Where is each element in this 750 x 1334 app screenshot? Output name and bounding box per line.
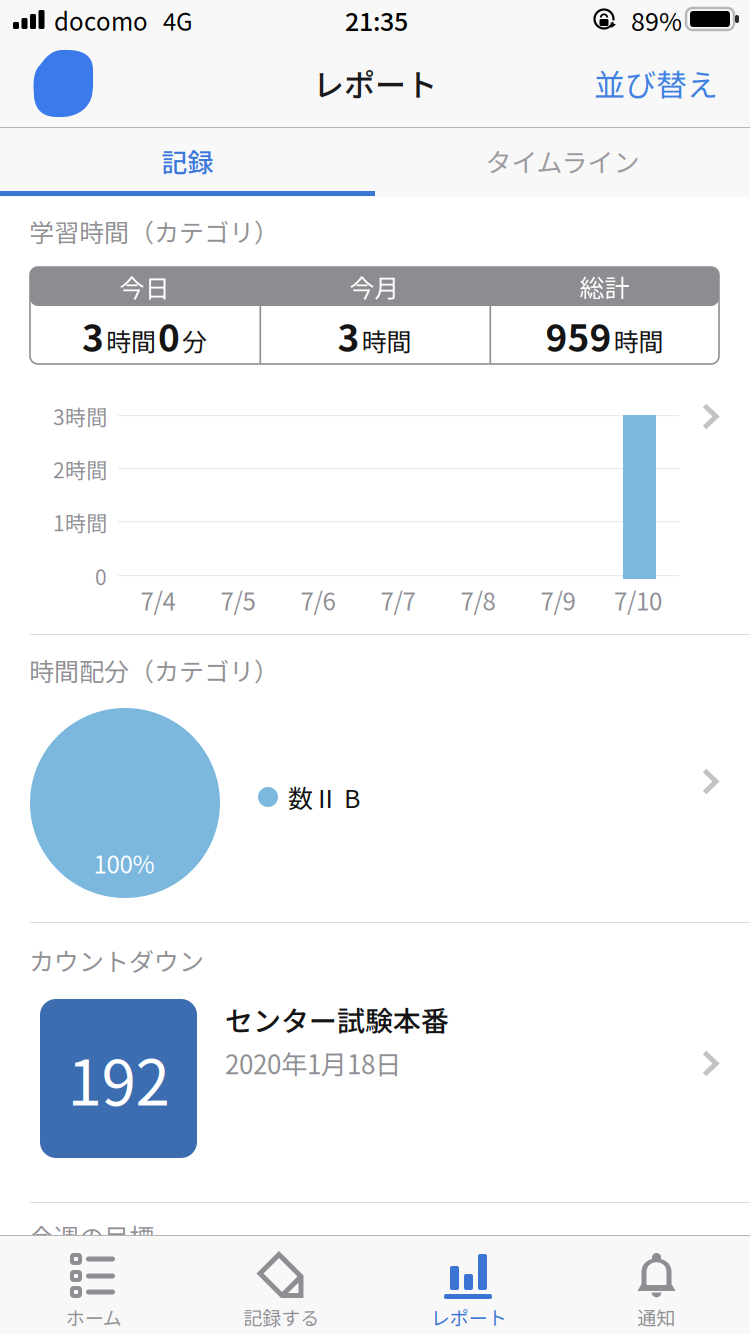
staticText: 4G	[163, 3, 193, 38]
staticText: 0	[158, 308, 180, 362]
staticText: ホーム	[66, 1303, 122, 1331]
staticText: 通知	[637, 1303, 675, 1331]
staticText: 時間	[106, 322, 156, 358]
staticText: 100%	[93, 846, 154, 880]
staticText: docomo	[54, 3, 148, 38]
staticText: 時間	[613, 322, 663, 358]
staticText: タイムライン	[485, 142, 639, 180]
staticText: 7/9	[540, 583, 575, 617]
staticText: 3	[82, 308, 104, 362]
staticText: 7/5	[220, 583, 255, 617]
staticText: 21:35	[345, 2, 408, 38]
staticText: 3時間	[53, 401, 107, 431]
staticText: 7/8	[460, 583, 495, 617]
button[interactable]: 並び替え	[568, 59, 718, 107]
staticText: 7/7	[380, 583, 415, 617]
button[interactable]: タイムライン	[375, 128, 750, 196]
staticText: カウントダウン	[29, 942, 204, 978]
staticText: 並び替え	[594, 61, 718, 105]
staticText: 2時間	[53, 454, 107, 484]
staticText: レポート	[431, 1303, 507, 1331]
button[interactable]: プロフィール	[31, 48, 96, 118]
button[interactable]: 記録する	[187, 1236, 375, 1334]
staticText: 2020年1月18日	[225, 1044, 401, 1082]
staticText: 3	[337, 308, 359, 362]
staticText: レポート	[313, 61, 437, 105]
staticText: 数Ⅱ B	[288, 779, 360, 815]
staticText: 今日	[119, 268, 169, 305]
staticText: 89%	[631, 2, 682, 38]
staticText: 今週の目標	[29, 1218, 154, 1254]
button[interactable]: 100%	[0, 705, 750, 922]
button[interactable]: 3時間	[0, 390, 750, 634]
staticText: 7/10	[614, 583, 662, 617]
button[interactable]: ホーム	[0, 1236, 187, 1334]
staticText: 1時間	[53, 507, 107, 537]
staticText: 時間	[361, 322, 411, 358]
staticText: 時間配分（カテゴリ）	[29, 652, 279, 688]
staticText: 総計	[579, 268, 629, 305]
staticText: 192	[67, 1034, 169, 1123]
staticText: 959	[545, 308, 611, 362]
button[interactable]: レポート	[375, 1236, 562, 1334]
staticText: 今月	[349, 268, 399, 305]
staticText: 7/6	[300, 583, 335, 617]
button[interactable]: 192	[0, 998, 750, 1202]
staticText: 0	[95, 561, 107, 591]
staticText: 学習時間（カテゴリ）	[29, 213, 279, 249]
staticText: 分	[182, 322, 207, 358]
staticText: 7/4	[140, 583, 175, 617]
staticText: 記録	[161, 142, 213, 180]
button[interactable]: 通知	[562, 1236, 750, 1334]
button[interactable]: 記録	[0, 128, 375, 196]
staticText: センター試験本番	[225, 999, 449, 1039]
staticText: 記録する	[243, 1303, 319, 1331]
